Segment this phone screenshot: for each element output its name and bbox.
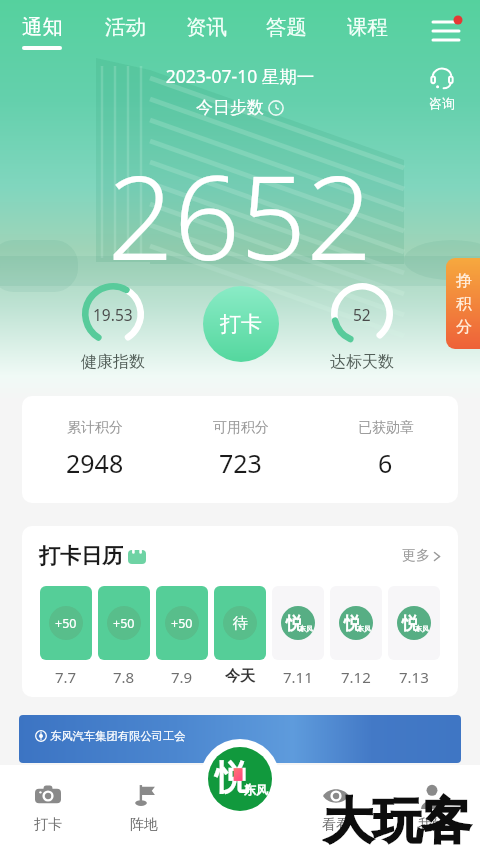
staticText: 活动 [105, 14, 146, 40]
button[interactable]: 课程 [338, 14, 396, 58]
staticText: 东风 [415, 624, 429, 633]
staticText: 已获勋章 [358, 419, 414, 437]
staticText: 待 [233, 614, 248, 633]
button[interactable]: 菜单 [426, 11, 466, 51]
staticText: 咨询 [429, 95, 455, 111]
staticText: 7.7 [55, 667, 77, 687]
staticText: 悦 [286, 613, 303, 634]
button[interactable]: 挣 积 分 [446, 258, 480, 349]
staticText: 2023-07-10 星期一 [0, 64, 480, 88]
staticText: 通知 [22, 14, 63, 40]
button[interactable]: 看看 [288, 765, 384, 853]
button[interactable]: 累计积分 [22, 396, 168, 503]
button[interactable]: 答题 [257, 14, 315, 58]
staticText: 大玩客 [324, 791, 471, 853]
staticText: 挣 积 分 [456, 271, 472, 337]
button[interactable]: 悦 [330, 586, 382, 687]
staticText: 健康指数 [81, 352, 145, 372]
staticText: +50 [55, 615, 77, 632]
staticText: 悦 [344, 613, 361, 634]
staticText: 我的 [418, 816, 446, 834]
staticText: 7.11 [283, 667, 313, 687]
staticText: 2652 [0, 136, 480, 294]
staticText: 东风 [357, 624, 371, 633]
staticText: 课程 [347, 14, 388, 40]
staticText: 7.13 [399, 667, 429, 687]
button[interactable]: 打卡 [0, 765, 96, 853]
staticText: 7.8 [113, 667, 135, 687]
button[interactable]: 打卡 [203, 286, 279, 362]
button[interactable]: 待 [214, 586, 266, 686]
staticText: +50 [171, 615, 193, 632]
staticText: 7.12 [341, 667, 371, 687]
button[interactable]: 咨询 [416, 66, 468, 111]
staticText: 阵地 [130, 816, 158, 834]
staticText: 悦 [215, 756, 249, 799]
button[interactable]: 活动 [96, 14, 154, 58]
staticText: 打卡 [34, 816, 62, 834]
staticText: 2948 [66, 446, 124, 480]
staticText: 看看 [322, 816, 350, 834]
button[interactable]: 通知 [13, 14, 71, 58]
button[interactable]: +50 [40, 586, 92, 687]
button[interactable]: 52 [330, 283, 394, 372]
staticText: 19.53 [93, 304, 133, 325]
button[interactable]: 阵地 [96, 765, 192, 853]
staticText: 6 [378, 446, 393, 480]
staticText: 打卡日历 [39, 543, 123, 569]
staticText: 723 [219, 446, 262, 480]
button[interactable]: 悦 [388, 586, 440, 687]
staticText: 东风 [244, 782, 268, 797]
staticText: 7.9 [171, 667, 193, 687]
button[interactable]: 已获勋章 [313, 396, 458, 503]
button[interactable]: 我的 [384, 765, 480, 853]
staticText: 东风 [299, 624, 313, 633]
staticText: +50 [113, 615, 135, 632]
button[interactable]: +50 [98, 586, 150, 687]
staticText: 东风汽车集团有限公司工会 [50, 729, 186, 743]
staticText: 悦 [402, 613, 419, 634]
staticText: 答题 [266, 14, 307, 40]
staticText: 打卡 [220, 311, 262, 337]
staticText: 达标天数 [330, 352, 394, 372]
staticText: 累计积分 [67, 419, 123, 437]
staticText: 更多 [402, 547, 430, 565]
staticText: 资讯 [186, 14, 227, 40]
button[interactable]: 更多 [402, 547, 442, 565]
button[interactable]: 悦东风 [208, 747, 272, 811]
button[interactable]: 东风汽车集团有限公司工会 [19, 715, 461, 763]
staticText: 今天 [225, 667, 255, 686]
button[interactable]: 可用积分 [168, 396, 313, 503]
staticText: 52 [353, 304, 371, 325]
staticText: 今日步数 [196, 97, 264, 118]
staticText: 可用积分 [213, 419, 269, 437]
button[interactable]: 资讯 [177, 14, 235, 58]
button[interactable]: 19.53 [81, 283, 145, 372]
button[interactable]: +50 [156, 586, 208, 687]
button[interactable]: 悦 [272, 586, 324, 687]
